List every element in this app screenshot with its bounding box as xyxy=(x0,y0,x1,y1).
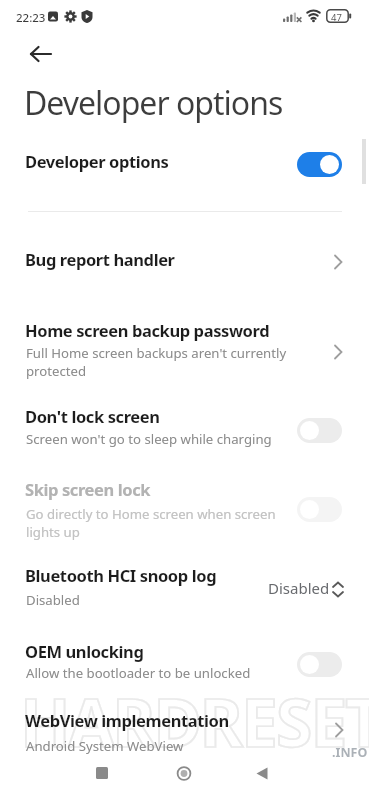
button[interactable] xyxy=(0,632,369,687)
staticText: Allow the bootloader to be unlocked xyxy=(26,664,251,682)
staticText: OEM unlocking xyxy=(25,640,144,662)
button[interactable] xyxy=(170,759,198,787)
staticText: Full Home screen backups aren't currentl… xyxy=(26,344,287,380)
button[interactable] xyxy=(297,497,342,522)
staticText: Bug report handler xyxy=(25,248,175,270)
staticText: Disabled xyxy=(268,578,330,598)
staticText: Bluetooth HCI snoop log xyxy=(25,564,217,586)
staticText: Android System WebView xyxy=(26,737,184,755)
button[interactable] xyxy=(0,705,369,760)
staticText: Disabled xyxy=(26,591,80,609)
button[interactable] xyxy=(297,652,342,677)
staticText: Screen won't go to sleep while charging xyxy=(26,430,272,448)
button[interactable] xyxy=(0,400,369,455)
button[interactable] xyxy=(0,472,369,544)
staticText: Skip screen lock xyxy=(25,478,151,500)
staticText: 22:23 xyxy=(16,10,46,26)
button[interactable] xyxy=(248,759,276,787)
staticText: Go directly to Home screen when screen l… xyxy=(26,505,276,541)
button[interactable] xyxy=(0,560,369,615)
staticText: Don't lock screen xyxy=(25,405,160,427)
button[interactable] xyxy=(22,40,58,70)
button[interactable] xyxy=(297,418,342,443)
button[interactable] xyxy=(88,759,116,787)
button[interactable] xyxy=(297,152,342,177)
staticText: Developer options xyxy=(25,150,169,172)
staticText: Home screen backup password xyxy=(25,319,270,341)
staticText: Developer options xyxy=(24,81,283,125)
button[interactable] xyxy=(0,312,369,384)
button[interactable] xyxy=(0,140,369,190)
button[interactable] xyxy=(0,236,369,286)
staticText: HARDRESET xyxy=(20,676,369,766)
staticText: .INFO xyxy=(332,744,368,761)
staticText: WebView implementation xyxy=(25,709,229,731)
staticText: 47 xyxy=(331,11,342,24)
